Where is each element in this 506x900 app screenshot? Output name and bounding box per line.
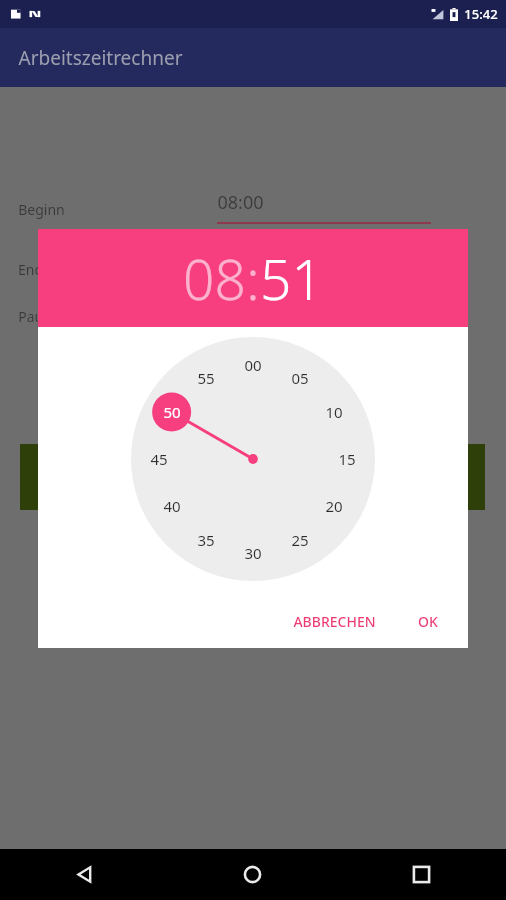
staticText: 15:42 [464,5,498,23]
staticText: 30 [244,543,262,563]
staticText: 35 [197,530,215,550]
button[interactable]: 51 [260,241,323,316]
staticText: 10 [325,402,343,422]
button[interactable]: Back [0,849,168,900]
staticText: 45 [150,449,168,469]
staticText: Ende [18,260,51,279]
button[interactable]: 15:00 [217,250,431,283]
button[interactable]: ABBRECHEN [279,603,390,640]
staticText: 15 [338,449,356,469]
staticText: 00 [244,355,262,375]
staticText: ABBRECHEN [293,612,376,631]
staticText: Arbeitszeitrechner [18,45,183,71]
staticText: 15:00 [217,250,264,275]
button[interactable]: 00 [131,337,375,581]
button[interactable]: 08:00 [217,190,431,224]
button[interactable]: 08 [183,241,246,316]
staticText: 50 [163,402,181,422]
staticText: OK [418,612,438,631]
staticText: Beginn [18,200,65,219]
staticText: 08:00 [217,190,264,215]
button[interactable]: Recent apps [337,849,506,900]
staticText: 05 [291,368,309,388]
staticText: 40 [163,496,181,516]
button[interactable]: Home [168,849,337,900]
button[interactable] [20,444,485,510]
staticText: Pause [18,307,58,326]
staticText: : [246,241,260,316]
button[interactable]: OK [404,603,452,640]
staticText: 25 [291,530,309,550]
staticText: 55 [197,368,215,388]
staticText: 20 [325,496,343,516]
